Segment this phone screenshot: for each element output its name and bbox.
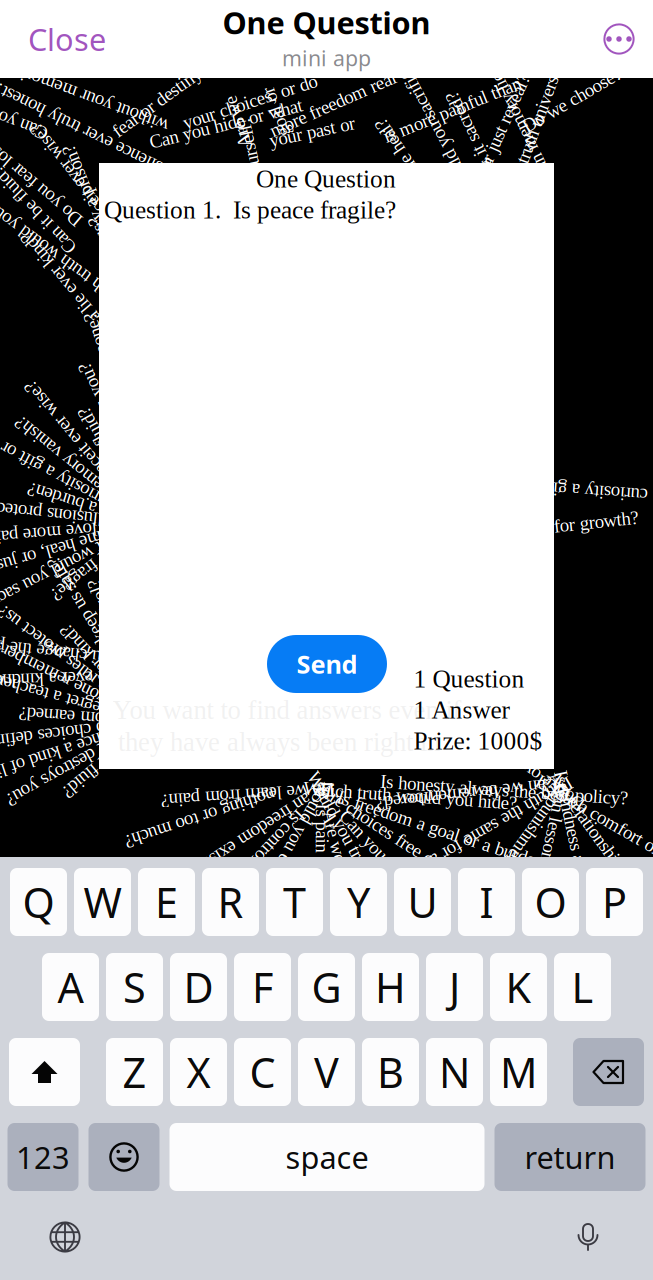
staticText: your past or [268,122,355,142]
staticText: Which truth would you hide? [0,238,153,258]
staticText: Are choices free or imagined? [303,838,523,858]
button[interactable]: I [458,868,515,936]
button[interactable]: return [494,1123,645,1191]
staticText: What would you sacrifice? [0,565,144,585]
staticText: V [314,1045,339,1099]
staticText: Does anyone remember? [0,676,168,696]
button[interactable]: B [362,1038,419,1106]
button[interactable]: F [234,953,291,1021]
button[interactable]: C [234,1038,291,1106]
staticText: Are we prisoners of habit? [254,894,447,914]
staticText: goal or [250,102,301,122]
staticText: I [479,875,493,929]
button[interactable]: U [394,868,451,936]
button[interactable]: P [586,868,643,936]
staticText: 1 Answer [413,696,509,724]
button[interactable]: Emoji [88,1123,159,1191]
staticText: K [505,960,531,1014]
staticText: Would you erase regret? [196,848,373,868]
button[interactable]: O [522,868,579,936]
staticText: Can we be remembered? [376,784,558,804]
staticText: Is freedom a goal or a burden? [332,821,556,841]
button[interactable]: W [74,868,131,936]
button[interactable]: M [490,1038,547,1106]
staticText: What would you sacrifice? [346,134,542,154]
staticText: mini app [282,44,371,72]
staticText: Are we [211,112,264,132]
button[interactable]: H [362,953,419,1021]
button[interactable]: Z [106,1038,163,1106]
button[interactable]: R [202,868,259,936]
staticText: Is regret a teacher? [0,687,126,707]
button[interactable]: L [554,953,611,1021]
button[interactable]: S [106,953,163,1021]
button[interactable]: space [169,1123,484,1191]
staticText: Can a memory vanish? [0,463,167,483]
staticText: What destroys you? [40,420,185,440]
staticText: Can time heal, or just reveal? [0,544,148,564]
button[interactable]: Send [267,635,387,693]
staticText: G [311,960,341,1014]
button[interactable]: 123 [7,1123,78,1191]
button[interactable]: G [298,953,355,1021]
staticText: E [155,875,178,929]
button[interactable]: V [298,1038,355,1106]
staticText: N [439,1045,470,1099]
button[interactable]: Change keyboard [40,1215,90,1259]
staticText: Is it sacred? [426,122,513,142]
staticText: Which truth would you hide? [303,786,517,806]
staticText: yourself? [216,140,283,160]
staticText: J [449,960,460,1014]
staticText: F [252,960,273,1014]
staticText: Do we choose? [516,90,627,110]
staticText: Z [122,1045,146,1099]
staticText: or just reveal? [452,112,555,132]
staticText: B [377,1045,404,1099]
button[interactable]: K [490,953,547,1021]
button[interactable]: More options [592,11,646,67]
staticText: Can it be fluid? [51,748,164,768]
button[interactable]: Q [10,868,67,936]
staticText: without your memories? [0,86,173,106]
button[interactable]: A [42,953,99,1021]
staticText: Can you forgive [0,104,51,124]
staticText: Are relationships puzzles? [512,840,653,860]
staticText: D [183,960,213,1014]
button[interactable]: Dictation [563,1215,613,1259]
staticText: Can freedom exist here? [156,829,334,849]
staticText: U [407,875,437,929]
button[interactable]: D [170,953,227,1021]
staticText: 1 Question [413,665,524,693]
button[interactable]: Close [0,11,124,67]
staticText: Is a lie ever kind? [1,274,131,294]
staticText: Can lessons be unlearned? [447,868,639,888]
staticText: Can memory lie? [456,114,583,134]
staticText: Can it be fluid? [0,200,90,220]
staticText: Is pain a teacher? [258,857,385,877]
staticText: M [500,1045,537,1099]
staticText: nothing or too much? [121,808,278,828]
staticText: Is kindness a choice? [499,836,653,856]
button[interactable]: X [170,1038,227,1106]
button[interactable]: Delete [573,1038,644,1106]
staticText: space [285,1137,368,1177]
staticText: Is ignorance ever a kindness? [0,668,187,688]
staticText: Is deceit ever wise? [6,172,149,192]
staticText: Is truth the same for all? [404,816,583,836]
button[interactable]: Y [330,868,387,936]
staticText: Would you change the past? [0,644,172,664]
staticText: Do we learn from pain? [161,785,335,805]
staticText: Is fate a comfort or choice? [523,820,653,840]
staticText: W [83,875,121,929]
button[interactable]: T [266,868,323,936]
button[interactable]: J [426,953,483,1021]
staticText: One Question [256,165,396,193]
staticText: One Question [222,2,430,43]
button[interactable]: Shift [9,1038,80,1106]
button[interactable]: N [426,1038,483,1106]
staticText: Is curiosity a gift or dangerous? [0,450,142,470]
staticText: 123 [16,1137,70,1177]
staticText: they have always been right in [118,727,440,757]
staticText: Is freedom earned? [19,708,159,728]
button[interactable]: E [138,868,195,936]
